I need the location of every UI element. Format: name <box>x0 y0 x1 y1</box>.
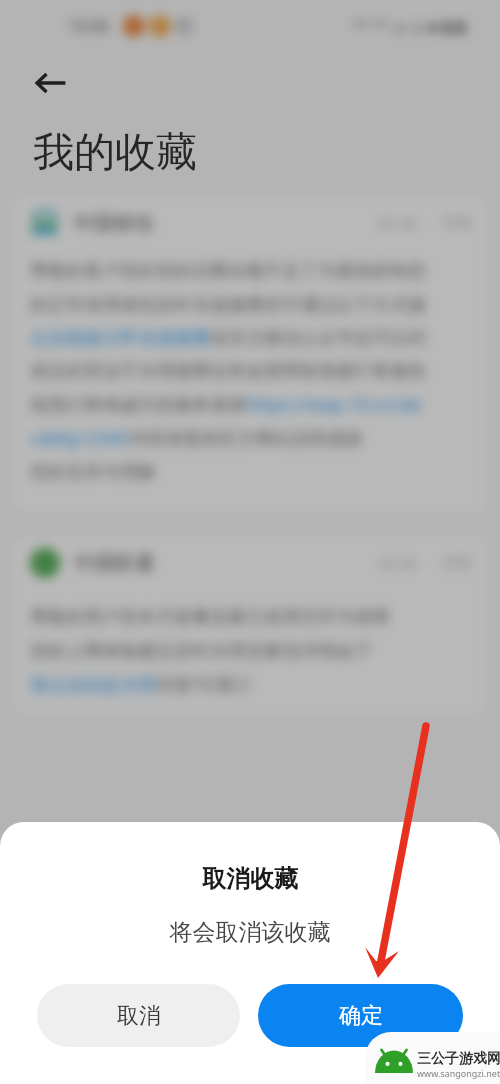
staticText: 10:06 <box>68 15 109 37</box>
button[interactable]: 确定 <box>258 984 463 1047</box>
staticText: 我的收藏 <box>33 127 197 179</box>
button[interactable]: 中国移动 <box>14 196 486 512</box>
staticText: ᴴᴰ ᴴᴰ ⊿ ⊿ ▰ ▮ ▮ <box>353 15 466 37</box>
staticText: 尊敬的客户您好您的话费余额不足了为避免影响您 的正常使用请您及时充值缴费您可通过… <box>30 260 426 483</box>
button[interactable]: Back <box>28 60 74 106</box>
button[interactable]: 取消 <box>37 984 240 1047</box>
staticText: 中国移动 <box>73 211 153 236</box>
button[interactable]: 中国联通 <box>14 536 486 714</box>
staticText: 中国联通 <box>74 551 154 576</box>
staticText: 取消收藏 <box>0 864 500 894</box>
staticText: www.sangongzi.net <box>417 1067 500 1079</box>
staticText: 确定 <box>339 1002 383 1030</box>
staticText: 尊敬的用户您本月套餐流量已使用完毕为保障 您的上网体验建议及时办理流量包详情如下… <box>30 606 390 696</box>
staticText: 将会取消该收藏 <box>0 918 500 947</box>
staticText: 三公子游戏网 <box>417 1050 500 1068</box>
staticText: 取消 <box>117 1002 161 1030</box>
